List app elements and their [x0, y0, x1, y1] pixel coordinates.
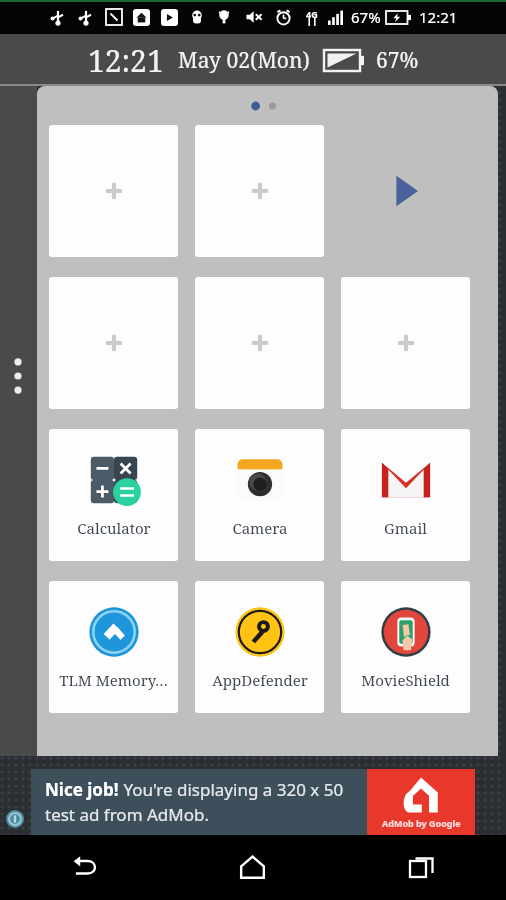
button[interactable]: Gmail	[341, 429, 470, 561]
staticText: TLM Memory…	[59, 670, 168, 690]
staticText: MovieShield	[361, 670, 450, 690]
button[interactable]: Add shortcut	[341, 277, 470, 409]
staticText: Calculator	[77, 518, 151, 538]
button[interactable]: Add shortcut	[195, 125, 324, 257]
button[interactable]: Add shortcut	[195, 277, 324, 409]
button[interactable]: TLM Memory…	[49, 581, 178, 713]
button[interactable]: Camera	[195, 429, 324, 561]
staticText: AdMob by Google	[382, 817, 461, 829]
button[interactable]: Calculator	[49, 429, 178, 561]
button[interactable]: Add shortcut	[49, 277, 178, 409]
staticText: 4G	[306, 8, 318, 20]
button[interactable]: Back	[0, 835, 168, 900]
button[interactable]: Nice job!	[31, 769, 475, 835]
staticText: 12:21	[88, 40, 164, 81]
button[interactable]: Next page	[386, 171, 426, 211]
staticText: Camera	[232, 518, 288, 538]
staticText: You're displaying a 320 x 50	[119, 778, 344, 801]
staticText: test ad from AdMob.	[45, 803, 209, 826]
staticText: Gmail	[384, 518, 427, 538]
button[interactable]: Info	[6, 810, 24, 828]
button[interactable]: MovieShield	[341, 581, 470, 713]
staticText: AppDefender	[212, 670, 308, 690]
button[interactable]: Add shortcut	[49, 125, 178, 257]
staticText: 67%	[376, 46, 419, 75]
button[interactable]: Home	[168, 835, 337, 900]
button[interactable]: AppDefender	[195, 581, 324, 713]
staticText: May 02(Mon)	[178, 46, 310, 75]
button[interactable]: Recent apps	[337, 835, 506, 900]
staticText: 67%	[351, 7, 381, 27]
staticText: Nice job!	[45, 778, 119, 801]
button[interactable]: More options	[10, 354, 26, 398]
staticText: 12:21	[419, 7, 458, 27]
